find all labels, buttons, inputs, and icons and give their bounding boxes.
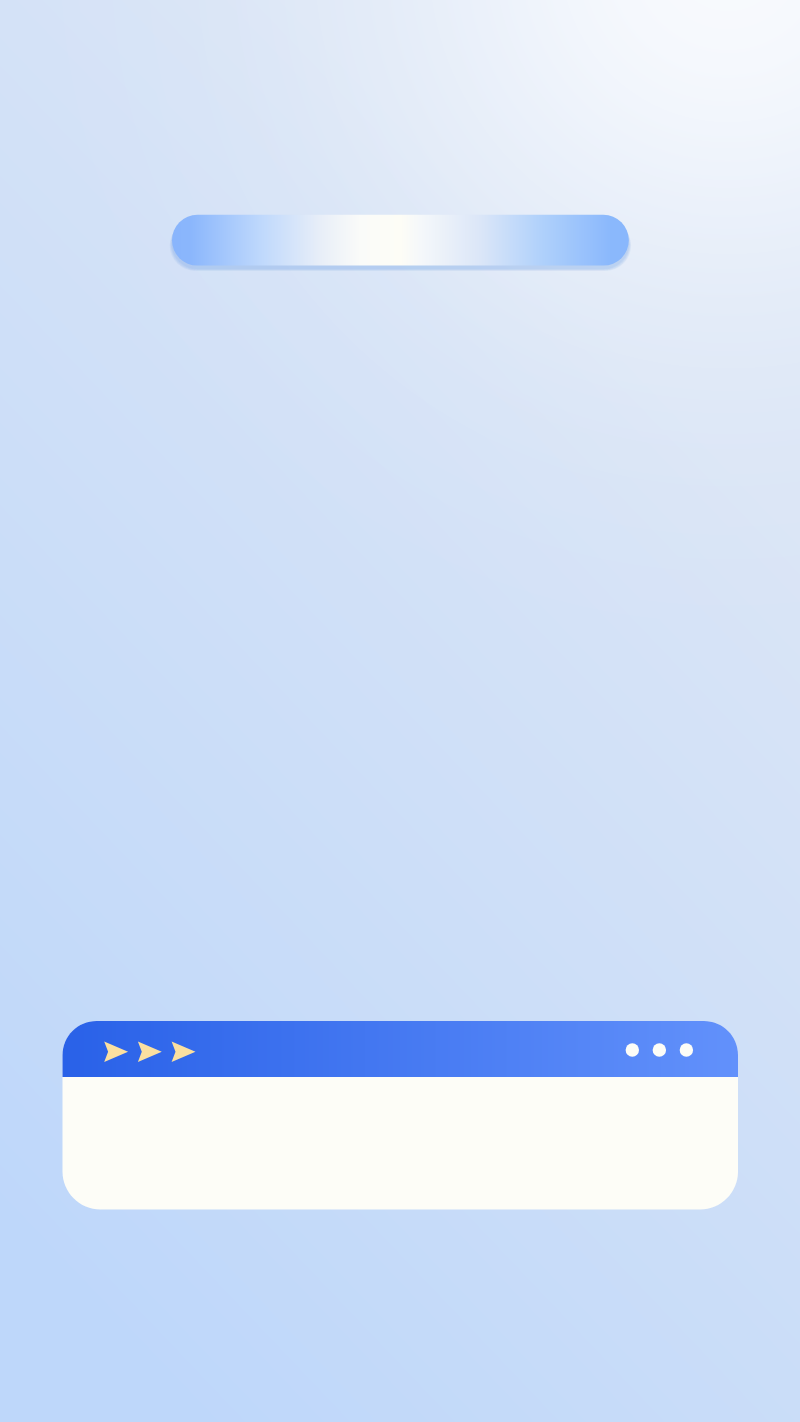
button[interactable]: Card xyxy=(63,1021,739,1210)
button[interactable]: Skip forward xyxy=(94,1031,205,1072)
button[interactable]: Search xyxy=(172,215,629,266)
button[interactable]: More options xyxy=(616,1033,704,1066)
